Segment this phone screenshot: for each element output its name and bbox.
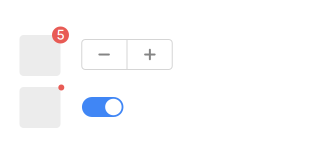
- staticText: 5: [56, 27, 64, 43]
- button[interactable]: Increment: [127, 39, 172, 69]
- button[interactable]: Toggle on: [82, 97, 123, 117]
- button[interactable]: Decrement: [82, 39, 127, 69]
- button[interactable]: Item with 5 notifications: [19, 35, 60, 76]
- button[interactable]: Item with unread badge: [19, 87, 60, 128]
